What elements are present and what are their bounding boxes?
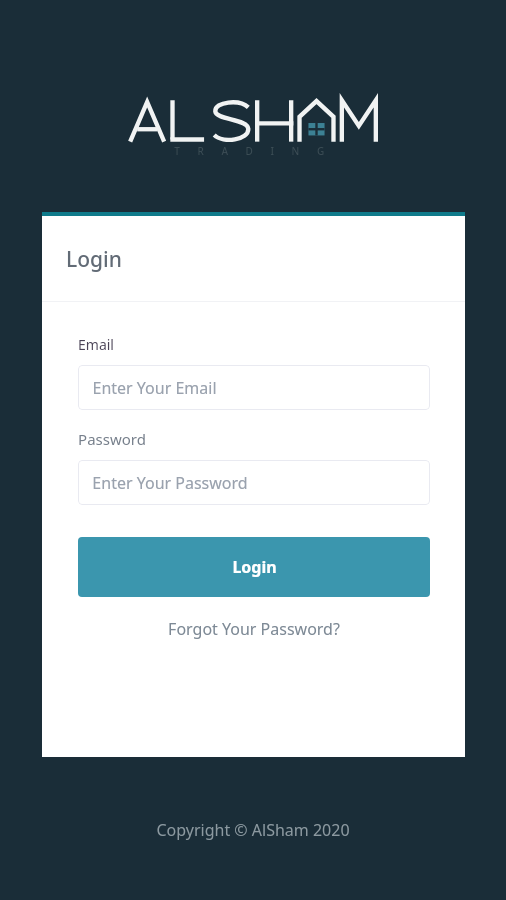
staticText: Login	[232, 556, 277, 578]
staticText: T R A D I N G	[174, 144, 332, 158]
staticText: Forgot Your Password?	[168, 618, 340, 640]
staticText: Copyright © AlSham 2020	[156, 819, 350, 841]
button[interactable]: Login	[78, 537, 430, 597]
staticText: Password	[78, 429, 146, 449]
button[interactable]: Enter Your Password	[78, 460, 430, 505]
staticText: Enter Your Email	[92, 377, 217, 399]
button[interactable]: Forgot Your Password?	[78, 616, 430, 642]
staticText: Email	[78, 335, 114, 354]
button[interactable]: Enter Your Email	[78, 365, 430, 410]
staticText: Enter Your Password	[92, 472, 248, 494]
staticText: Login	[66, 245, 122, 274]
